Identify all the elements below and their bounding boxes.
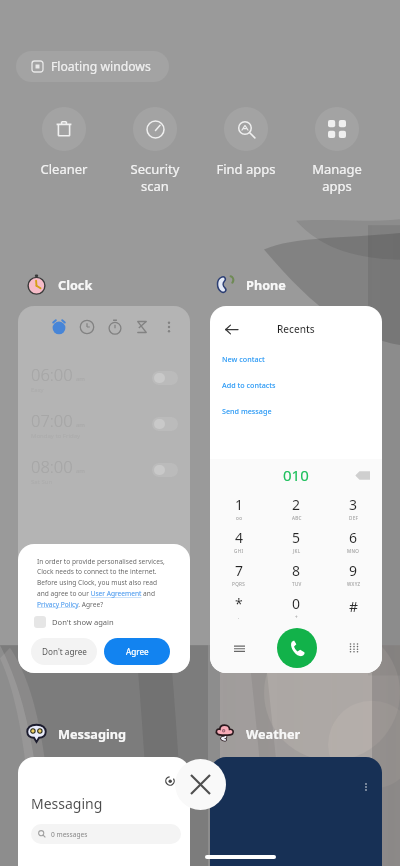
staticText: Don't show again: [52, 617, 114, 627]
button[interactable]: Clock: [26, 274, 93, 295]
staticText: 3: [349, 495, 358, 514]
button[interactable]: [210, 757, 382, 866]
button[interactable]: 4: [210, 524, 268, 557]
button[interactable]: Close all recent apps: [175, 759, 226, 810]
button[interactable]: 5: [268, 524, 325, 557]
button[interactable]: Floating windows: [16, 51, 169, 82]
button[interactable]: 3: [325, 491, 382, 524]
staticText: 010: [283, 465, 309, 485]
button[interactable]: Messaging: [18, 757, 190, 866]
button[interactable]: 06:00: [31, 355, 178, 401]
staticText: Don't agree: [42, 646, 87, 657]
staticText: Agree: [126, 646, 149, 657]
staticText: 2: [292, 495, 301, 514]
button[interactable]: Don't agree: [31, 638, 97, 665]
button[interactable]: New contact: [222, 354, 265, 364]
button[interactable]: 1: [210, 491, 268, 524]
staticText: Find apps: [200, 160, 292, 178]
staticText: 6: [349, 528, 358, 547]
button[interactable]: Cleaner: [18, 107, 110, 178]
button[interactable]: Send message: [222, 406, 272, 416]
button[interactable]: #: [325, 590, 382, 623]
staticText: Recents: [277, 322, 315, 336]
staticText: 7: [235, 561, 244, 580]
staticText: 9: [349, 561, 358, 580]
staticText: Security scan: [109, 160, 201, 195]
staticText: 4: [235, 528, 244, 547]
button[interactable]: Call log: [210, 623, 268, 673]
staticText: #: [349, 597, 359, 616]
button[interactable]: 7: [210, 557, 268, 590]
staticText: In order to provide personalised service…: [37, 557, 170, 609]
button[interactable]: 0: [268, 590, 325, 623]
staticText: 0 messages: [51, 830, 88, 839]
staticText: JKL: [293, 548, 301, 554]
button[interactable]: Agree: [104, 638, 170, 665]
staticText: oo: [236, 515, 243, 521]
staticText: +: [295, 614, 298, 620]
staticText: 0: [292, 594, 301, 613]
button[interactable]: 9: [325, 557, 382, 590]
button[interactable]: Keypad: [325, 623, 382, 673]
staticText: GHI: [234, 548, 244, 554]
button[interactable]: Back: [219, 317, 243, 341]
button[interactable]: Messaging: [26, 723, 126, 744]
button[interactable]: Call: [277, 628, 317, 668]
staticText: 08:00: [31, 455, 73, 477]
staticText: Messaging: [58, 725, 126, 742]
staticText: Weather: [246, 725, 301, 742]
button[interactable]: Back: [210, 306, 382, 673]
staticText: DEF: [349, 515, 359, 521]
button[interactable]: Security scan: [109, 107, 201, 195]
staticText: 8: [292, 561, 301, 580]
button[interactable]: 06:00: [18, 306, 190, 673]
button[interactable]: 07:00: [31, 401, 178, 447]
button[interactable]: Add to contacts: [222, 380, 276, 390]
staticText: Phone: [246, 276, 286, 293]
staticText: *: [235, 594, 243, 613]
staticText: WXYZ: [347, 581, 361, 587]
staticText: TUV: [292, 581, 302, 587]
staticText: Cleaner: [18, 160, 110, 178]
staticText: MNO: [347, 548, 360, 554]
staticText: 5: [292, 528, 301, 547]
button[interactable]: Find apps: [200, 107, 292, 178]
button[interactable]: Backspace: [352, 465, 372, 485]
staticText: 07:00: [31, 409, 73, 431]
staticText: ABC: [292, 515, 302, 521]
staticText: Floating windows: [51, 58, 151, 75]
button[interactable]: 2: [268, 491, 325, 524]
staticText: 1: [235, 495, 244, 514]
button[interactable]: Manage apps: [291, 107, 383, 195]
button[interactable]: 6: [325, 524, 382, 557]
staticText: PQRS: [232, 581, 246, 587]
button[interactable]: 0 messages: [31, 824, 181, 844]
button[interactable]: *: [210, 590, 268, 623]
button[interactable]: 08:00: [31, 447, 178, 493]
staticText: Manage apps: [291, 160, 383, 195]
staticText: 06:00: [31, 363, 73, 385]
button[interactable]: 8: [268, 557, 325, 590]
button[interactable]: Weather: [214, 723, 301, 744]
staticText: .: [238, 614, 240, 620]
button[interactable]: Phone: [214, 274, 286, 295]
staticText: Clock: [58, 276, 93, 293]
button[interactable]: Don't show again: [34, 616, 114, 628]
staticText: Messaging: [31, 794, 103, 813]
